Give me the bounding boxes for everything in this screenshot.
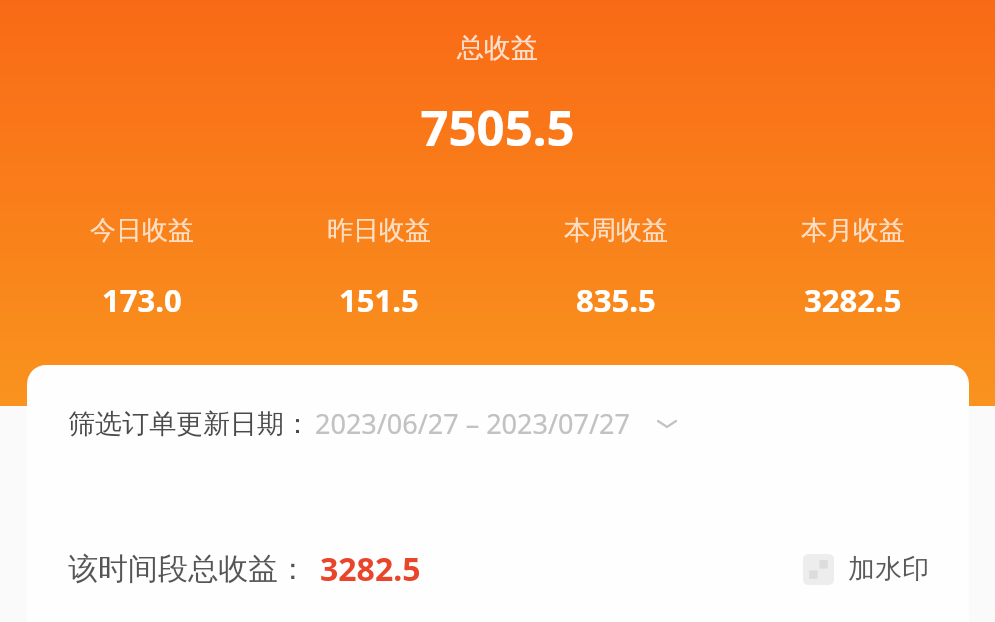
button[interactable]: 本月收益 [734,214,971,321]
staticText: 筛选订单更新日期： [68,407,311,441]
staticText: 总收益 [0,31,995,65]
button[interactable]: Add watermark toggle [797,546,935,592]
button[interactable]: 筛选订单更新日期： [27,399,969,448]
staticText: 151.5 [339,279,419,321]
button[interactable]: 昨日收益 [260,214,497,321]
staticText: 2023/06/27 – 2023/07/27 [315,405,630,442]
staticText: 今日收益 [90,214,194,247]
staticText: 835.5 [576,279,656,321]
staticText: 加水印 [848,552,929,586]
other: Add watermark toggle [803,554,834,585]
staticText: 昨日收益 [327,214,431,247]
staticText: 173.0 [102,279,182,321]
staticText: 3282.5 [320,547,421,591]
button[interactable]: 本周收益 [497,214,734,321]
staticText: 该时间段总收益： [68,550,308,588]
staticText: 7505.5 [0,94,995,161]
staticText: 本月收益 [801,214,905,247]
staticText: 3282.5 [804,279,902,321]
other: Expand date range picker [652,409,682,439]
button[interactable]: 今日收益 [24,214,260,321]
staticText: 本周收益 [564,214,668,247]
